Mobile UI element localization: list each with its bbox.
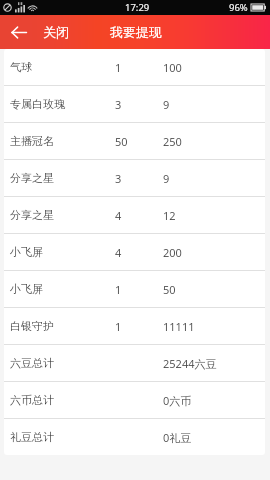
staticText: 250	[163, 134, 182, 149]
staticText: 100	[163, 60, 182, 75]
staticText: 96%	[229, 1, 248, 14]
staticText: 3	[115, 97, 122, 112]
staticText: 9	[163, 171, 170, 186]
staticText: 小飞屏	[10, 245, 43, 259]
staticText: 11111	[163, 319, 195, 334]
button[interactable]: 分享之星	[4, 160, 265, 196]
staticText: 25244六豆	[163, 356, 217, 371]
button[interactable]: 白银守护	[4, 308, 265, 344]
staticText: 我要提现	[110, 24, 162, 40]
staticText: 50	[163, 282, 176, 297]
staticText: 关闭	[43, 24, 69, 40]
staticText: 分享之星	[10, 171, 54, 185]
button[interactable]: 小飞屏	[4, 271, 265, 307]
staticText: 12	[163, 208, 176, 223]
staticText: 1	[115, 282, 122, 297]
staticText: 专属白玫瑰	[10, 97, 65, 111]
staticText: 气球	[10, 60, 32, 74]
staticText: 白银守护	[10, 319, 54, 333]
staticText: 六豆总计	[10, 356, 54, 370]
other: Back	[10, 26, 27, 39]
staticText: 200	[163, 245, 182, 260]
button[interactable]: 分享之星	[4, 197, 265, 233]
button[interactable]: 六币总计	[4, 382, 265, 418]
staticText: 9	[163, 97, 170, 112]
staticText: 4	[115, 208, 122, 223]
button[interactable]: 气球	[4, 49, 265, 85]
button[interactable]: 主播冠名	[4, 123, 265, 159]
staticText: 17:29	[125, 1, 150, 14]
staticText: 4	[115, 245, 122, 260]
staticText: 0六币	[163, 393, 192, 408]
button[interactable]: Back	[0, 15, 73, 49]
button[interactable]: 六豆总计	[4, 345, 265, 381]
staticText: 分享之星	[10, 208, 54, 222]
staticText: 1	[115, 319, 122, 334]
staticText: 礼豆总计	[10, 430, 54, 444]
button[interactable]: 专属白玫瑰	[4, 86, 265, 122]
staticText: 0礼豆	[163, 430, 192, 445]
staticText: 3	[115, 171, 122, 186]
button[interactable]: 小飞屏	[4, 234, 265, 270]
staticText: 主播冠名	[10, 134, 54, 148]
staticText: 六币总计	[10, 393, 54, 407]
staticText: 50	[115, 134, 128, 149]
button[interactable]: 礼豆总计	[4, 419, 265, 455]
staticText: 小飞屏	[10, 282, 43, 296]
staticText: 1	[115, 60, 122, 75]
